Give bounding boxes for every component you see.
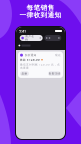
staticText: 一律收到通知 [19, 11, 61, 19]
staticText: 9:41 [19, 28, 26, 34]
staticText: 微信支付到账 128.00 元，点击查看 [20, 63, 60, 69]
staticText: 每笔销售 [26, 4, 54, 12]
staticText: 收款 ¥128.00 [20, 58, 40, 61]
button[interactable]: 查看详情 [48, 71, 61, 76]
staticText: 商户名称 [25, 35, 34, 41]
staticText: 忽略 [21, 72, 27, 75]
staticText: 收款通知 [25, 53, 37, 57]
staticText: 查看详情 [48, 72, 60, 75]
button[interactable]: 忽略 [20, 71, 29, 76]
staticText: 现在 [55, 53, 61, 57]
